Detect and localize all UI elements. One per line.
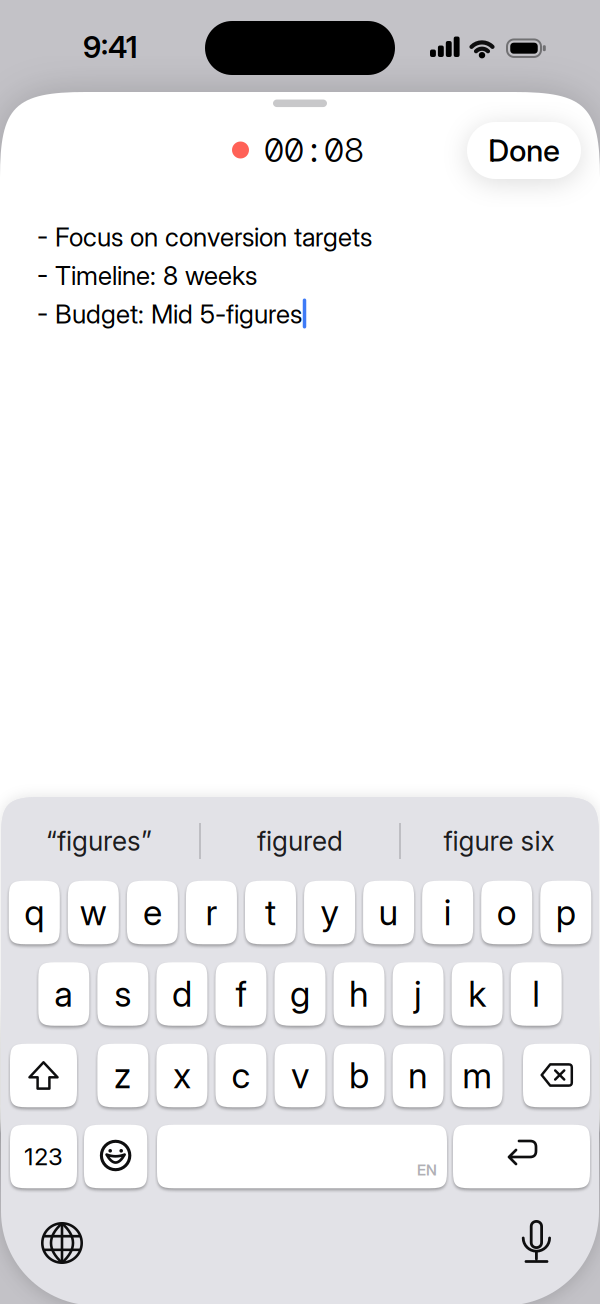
button[interactable]: d [156,962,207,1026]
button[interactable]: q [9,881,60,944]
staticText: “figures” [46,825,152,857]
staticText: g [290,973,310,1015]
button[interactable]: 123 [10,1125,77,1188]
button[interactable]: c [215,1044,266,1107]
staticText: t [265,891,276,934]
button[interactable]: g [274,962,325,1026]
button[interactable]: x [156,1044,207,1107]
staticText: a [54,973,73,1015]
staticText: h [349,973,369,1015]
staticText: j [414,973,422,1015]
staticText: - Budget: Mid 5-figures [37,298,302,330]
button[interactable]: Done [467,122,581,179]
staticText: o [497,891,517,934]
staticText: y [321,891,339,934]
staticText: e [143,891,162,934]
staticText: u [379,891,399,934]
button[interactable] [34,1215,90,1271]
button[interactable]: t [245,881,296,944]
button[interactable]: j [393,962,444,1026]
button[interactable]: e [127,881,178,944]
staticText: q [24,891,44,934]
staticText: f [235,973,246,1015]
button[interactable]: k [452,962,503,1026]
button[interactable] [508,1214,564,1270]
button[interactable]: n [393,1044,444,1107]
button[interactable] [453,1125,590,1188]
button[interactable]: m [452,1044,503,1107]
staticText: 9:41 [83,29,137,65]
staticText: z [114,1054,132,1097]
button[interactable]: z [97,1044,148,1107]
button[interactable]: w [68,881,119,944]
button[interactable]: f [215,962,266,1026]
button[interactable] [157,1125,447,1188]
staticText: 00:08 [264,128,364,172]
staticText: v [291,1054,309,1097]
staticText: c [231,1054,250,1097]
staticText: l [532,973,540,1015]
staticText: x [173,1054,191,1097]
staticText: m [462,1054,492,1097]
staticText: EN [417,1161,437,1179]
staticText: p [556,891,576,934]
staticText: figure six [443,825,554,857]
button[interactable]: h [334,962,385,1026]
staticText: - Timeline: 8 weeks [37,260,257,291]
staticText: - Focus on conversion targets [37,221,372,253]
staticText: k [468,973,486,1015]
button[interactable]: a [38,962,89,1026]
button[interactable] [10,1044,77,1107]
button[interactable] [84,1125,147,1188]
button[interactable]: figured [205,813,395,869]
staticText: n [408,1054,428,1097]
staticText: Done [488,132,560,169]
button[interactable]: r [186,881,237,944]
button[interactable] [523,1044,590,1107]
staticText: r [205,891,217,934]
button[interactable]: s [97,962,148,1026]
staticText: i [444,891,452,934]
button[interactable]: “figures” [4,813,194,869]
button[interactable]: l [511,962,562,1026]
staticText: w [80,891,107,934]
button[interactable]: figure six [404,813,594,869]
staticText: b [349,1054,369,1097]
button[interactable]: u [363,881,414,944]
button[interactable]: b [333,1044,384,1107]
staticText: 123 [24,1142,63,1171]
button[interactable]: o [481,881,532,944]
staticText: s [114,973,131,1015]
staticText: d [172,973,192,1015]
button[interactable]: p [540,881,591,944]
button[interactable]: v [274,1044,325,1107]
button[interactable]: y [304,881,355,944]
button[interactable]: i [422,881,473,944]
staticText: figured [257,825,343,857]
